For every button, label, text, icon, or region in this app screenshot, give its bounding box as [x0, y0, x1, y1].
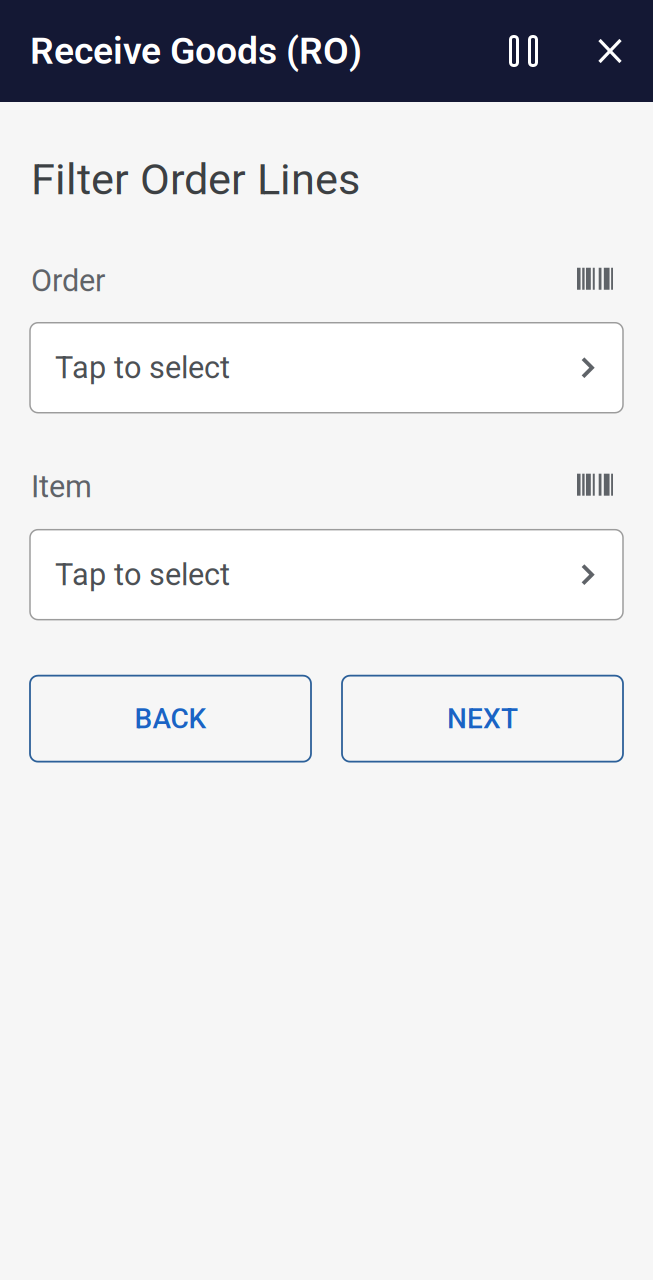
- staticText: Receive Goods (RO): [30, 29, 362, 73]
- staticText: Filter Order Lines: [31, 154, 360, 205]
- staticText: Item: [31, 469, 92, 505]
- button[interactable]: BACK: [30, 676, 311, 762]
- staticText: Tap to select: [55, 557, 230, 593]
- staticText: Order: [31, 263, 105, 299]
- button[interactable]: Tap to select: [30, 323, 623, 413]
- button[interactable]: NEXT: [342, 676, 623, 762]
- button[interactable]: Tap to select: [30, 530, 623, 620]
- button[interactable]: Scan barcode: [577, 268, 623, 294]
- button[interactable]: Pause: [480, 0, 567, 102]
- staticText: Tap to select: [55, 350, 230, 386]
- staticText: BACK: [134, 702, 206, 735]
- staticText: NEXT: [447, 702, 518, 735]
- button[interactable]: Close: [567, 0, 653, 102]
- button[interactable]: Scan barcode: [577, 474, 623, 500]
